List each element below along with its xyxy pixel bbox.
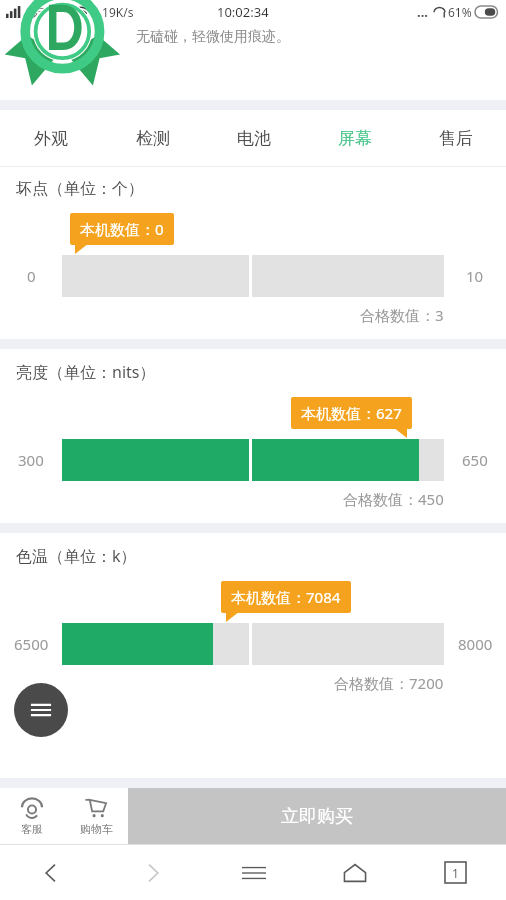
staticText: 8000	[458, 634, 493, 654]
button[interactable]: 屏幕	[304, 110, 405, 166]
staticText: 屏幕	[338, 128, 372, 149]
staticText: ...	[417, 3, 428, 21]
staticText: 检测	[136, 128, 170, 149]
staticText: 合格数值：7200	[334, 673, 444, 693]
button[interactable]: Menu	[14, 683, 68, 737]
staticText: 亮度（单位：nits）	[16, 361, 156, 383]
staticText: 客服	[21, 822, 43, 836]
staticText: 6500	[14, 634, 49, 654]
staticText: 61%	[448, 4, 472, 20]
button[interactable]: 外观	[0, 110, 102, 166]
staticText: 0.19K/s	[92, 4, 134, 20]
button[interactable]: 售后	[405, 110, 506, 166]
button[interactable]: 电池	[203, 110, 304, 166]
button[interactable]: 检测	[102, 110, 203, 166]
staticText: 0	[27, 266, 36, 286]
button[interactable]: Forward	[102, 845, 203, 900]
staticText: 650	[462, 450, 488, 470]
staticText: 10	[466, 266, 484, 286]
button[interactable]: 立即购买	[128, 788, 506, 844]
staticText: 购物车	[80, 822, 113, 836]
staticText: 本机数值：0	[80, 219, 164, 239]
staticText: 本机数值：7084	[231, 587, 341, 607]
staticText: 10:02:34	[217, 3, 269, 21]
staticText: 立即购买	[281, 805, 353, 828]
button[interactable]: Back	[0, 845, 102, 900]
staticText: 300	[18, 450, 44, 470]
button[interactable]: Menu	[203, 845, 304, 900]
staticText: 外观	[34, 128, 68, 149]
staticText: 1	[452, 865, 459, 881]
button[interactable]: 购物车	[64, 796, 128, 836]
staticText: 移动 3G	[26, 4, 69, 20]
button[interactable]: Tabs	[405, 845, 506, 900]
staticText: 本机数值：627	[301, 403, 402, 423]
staticText: 坏点（单位：个）	[16, 179, 144, 199]
staticText: 无磕碰，轻微使用痕迹。	[136, 28, 290, 46]
button[interactable]: 客服	[0, 796, 64, 836]
button[interactable]: Home	[304, 845, 405, 900]
staticText: 色温（单位：k）	[16, 545, 137, 567]
staticText: 合格数值：450	[343, 489, 444, 509]
staticText: 售后	[439, 128, 473, 149]
staticText: 合格数值：3	[360, 305, 444, 325]
staticText: 电池	[237, 128, 271, 149]
